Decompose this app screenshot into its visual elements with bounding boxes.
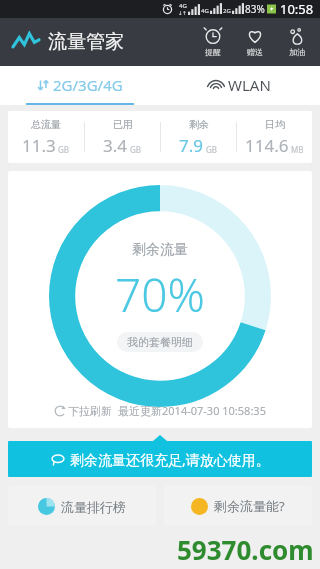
staticText: 2G/3G/4G: [53, 75, 123, 95]
staticText: 剩余: [189, 118, 209, 131]
staticText: 已用: [113, 118, 133, 131]
staticText: 我的套餐明细: [127, 335, 193, 349]
button[interactable]: 我的套餐明细: [117, 332, 203, 352]
staticText: 加油: [289, 47, 305, 57]
button[interactable]: WLAN: [160, 66, 320, 103]
staticText: 2G: [223, 7, 231, 15]
staticText: GB: [206, 144, 218, 155]
staticText: 70%: [115, 263, 205, 326]
staticText: 114.6: [245, 134, 289, 157]
staticText: 4G: [179, 2, 187, 10]
staticText: 4G: [201, 7, 209, 15]
button[interactable]: 加油: [284, 25, 310, 59]
staticText: 11.3: [22, 134, 56, 157]
button[interactable]: 提醒: [200, 25, 226, 59]
staticText: 提醒: [205, 47, 221, 57]
staticText: 剩余流量: [132, 241, 188, 259]
staticText: 日均: [265, 118, 285, 131]
staticText: 赠送: [247, 47, 263, 57]
staticText: 3.4: [103, 134, 128, 157]
button[interactable]: 总流量: [8, 111, 312, 163]
button[interactable]: 赠送: [242, 25, 268, 59]
staticText: 7.9: [179, 134, 204, 157]
staticText: 总流量: [31, 118, 61, 131]
staticText: 剩余流量还很充足,请放心使用。: [70, 450, 270, 469]
button[interactable]: 剩余流量能?: [164, 486, 312, 526]
staticText: MB: [291, 144, 304, 155]
staticText: 下拉刷新: [68, 404, 112, 418]
staticText: 83%: [245, 2, 265, 16]
button[interactable]: 2G/3G/4G: [0, 66, 160, 103]
staticText: 最近更新2014-07-30 10:58:35: [118, 403, 266, 418]
staticText: 流量管家: [48, 30, 124, 54]
staticText: 剩余流量能?: [214, 497, 285, 515]
staticText: GB: [58, 144, 70, 155]
staticText: 10:58: [280, 0, 314, 18]
staticText: GB: [130, 144, 142, 155]
button[interactable]: 剩余流量还很充足,请放心使用。: [8, 441, 312, 477]
staticText: WLAN: [228, 75, 271, 95]
button[interactable]: 下拉刷新: [54, 403, 266, 418]
staticText: 流量排行榜: [61, 499, 126, 515]
staticText: ↓↑: [178, 10, 187, 16]
button[interactable]: 流量排行榜: [8, 486, 156, 526]
staticText: 59370.com: [177, 532, 314, 567]
